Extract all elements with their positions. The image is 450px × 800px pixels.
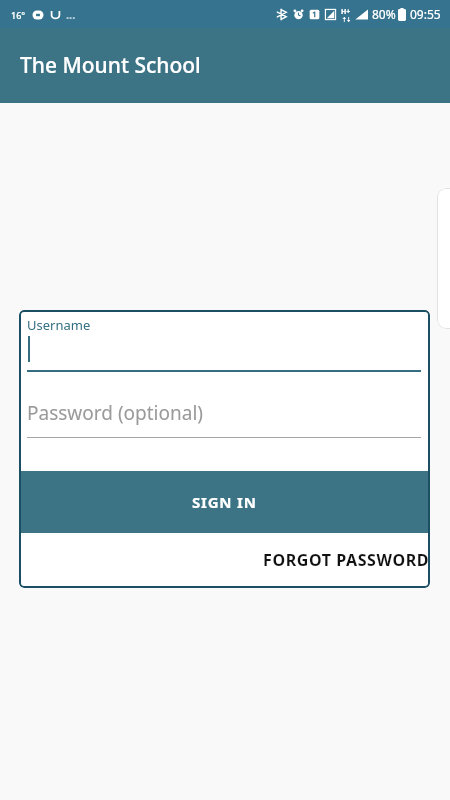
staticText: Username <box>27 316 91 334</box>
staticText: FORGOT PASSWORD <box>263 549 430 571</box>
staticText: SIGN IN <box>192 492 257 512</box>
staticText: 80% <box>372 6 396 22</box>
staticText: 16° <box>11 9 26 21</box>
button[interactable]: Password (optional) <box>19 400 430 438</box>
staticText: 09:55 <box>410 6 441 22</box>
staticText: ... <box>66 7 76 22</box>
button[interactable]: FORGOT PASSWORD <box>19 533 430 586</box>
button[interactable]: Username <box>19 310 430 372</box>
staticText: H+ <box>341 7 351 17</box>
button[interactable]: SIGN IN <box>19 471 430 533</box>
staticText: Password (optional) <box>27 400 204 426</box>
staticText: The Mount School <box>20 51 201 80</box>
